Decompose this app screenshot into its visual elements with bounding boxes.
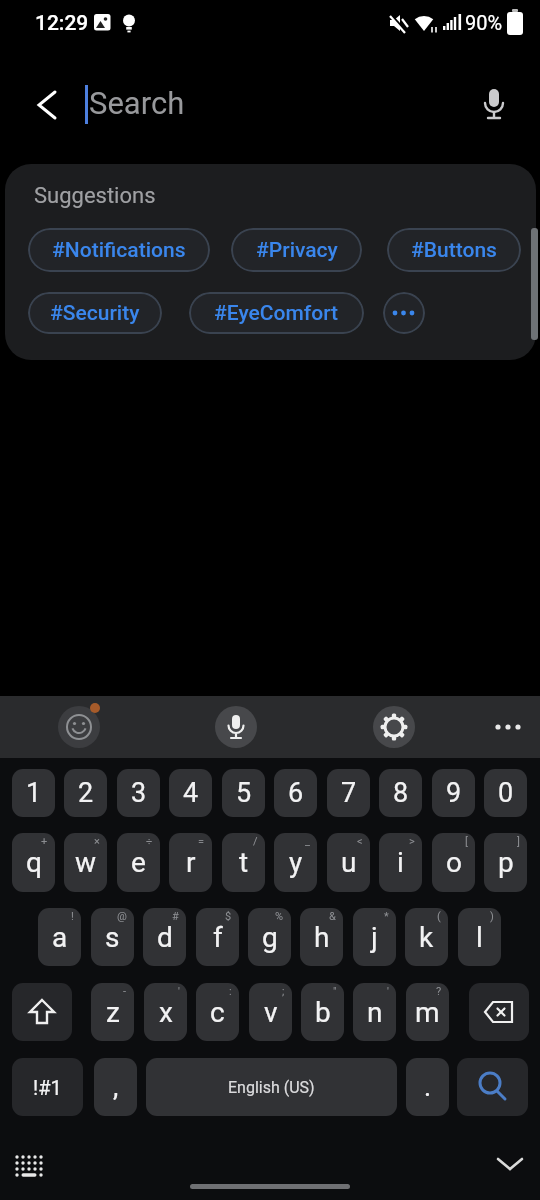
staticText: ? bbox=[436, 985, 442, 998]
staticText: n bbox=[367, 996, 383, 1029]
staticText: _ bbox=[305, 835, 310, 848]
button[interactable]: x bbox=[144, 983, 187, 1041]
button[interactable]: e bbox=[117, 833, 160, 892]
button[interactable]: . bbox=[406, 1058, 449, 1116]
staticText: [ bbox=[465, 835, 468, 848]
button[interactable]: 0 bbox=[484, 769, 527, 817]
button[interactable]: 1 bbox=[12, 769, 55, 817]
staticText: a bbox=[52, 921, 68, 954]
staticText: x bbox=[159, 996, 173, 1029]
staticText: = bbox=[198, 835, 205, 848]
button[interactable]: s bbox=[91, 908, 134, 966]
button[interactable]: #Security bbox=[28, 292, 162, 334]
staticText: u bbox=[341, 846, 357, 879]
button[interactable]: 8 bbox=[379, 769, 422, 817]
button[interactable]: f bbox=[196, 908, 239, 966]
button[interactable]: p bbox=[484, 833, 527, 892]
staticText: $ bbox=[225, 910, 232, 923]
staticText: o bbox=[446, 846, 462, 879]
staticText: 2 bbox=[78, 777, 94, 809]
staticText: c bbox=[210, 996, 225, 1029]
button[interactable]: #Privacy bbox=[231, 228, 362, 272]
button[interactable]: o bbox=[432, 833, 475, 892]
button[interactable]: 4 bbox=[169, 769, 212, 817]
staticText: * bbox=[384, 910, 389, 923]
staticText: ; bbox=[282, 985, 285, 998]
button[interactable]: u bbox=[327, 833, 370, 892]
staticText: k bbox=[419, 921, 434, 954]
staticText: 4 bbox=[183, 777, 199, 809]
button[interactable]: 3 bbox=[117, 769, 160, 817]
staticText: b bbox=[315, 996, 331, 1029]
staticText: s bbox=[105, 921, 120, 954]
button[interactable]: #EyeComfort bbox=[189, 292, 364, 334]
button[interactable]: g bbox=[248, 908, 291, 966]
button[interactable]: h bbox=[300, 908, 343, 966]
staticText: 9 bbox=[446, 777, 462, 809]
staticText: 0 bbox=[498, 777, 514, 809]
button[interactable]: n bbox=[353, 983, 396, 1041]
button[interactable]: a bbox=[38, 908, 81, 966]
staticText: 12:29 bbox=[35, 11, 89, 36]
button[interactable]: 9 bbox=[432, 769, 475, 817]
button[interactable]: t bbox=[222, 833, 265, 892]
button[interactable]: English (US) bbox=[146, 1058, 397, 1116]
staticText: English (US) bbox=[228, 1078, 315, 1097]
staticText: 90% bbox=[465, 11, 503, 34]
staticText: #EyeComfort bbox=[214, 301, 339, 326]
staticText: 6 bbox=[288, 777, 304, 809]
staticText: ' bbox=[387, 985, 389, 998]
button[interactable]: y bbox=[274, 833, 317, 892]
staticText: i bbox=[397, 846, 404, 879]
button[interactable]: 2 bbox=[64, 769, 107, 817]
button[interactable]: c bbox=[196, 983, 239, 1041]
staticText: r bbox=[186, 846, 196, 879]
staticText: #Buttons bbox=[411, 238, 497, 263]
button[interactable]: v bbox=[249, 983, 292, 1041]
button[interactable] bbox=[469, 983, 529, 1041]
button[interactable] bbox=[12, 983, 72, 1041]
button[interactable]: l bbox=[458, 908, 501, 966]
button[interactable]: m bbox=[406, 983, 449, 1041]
button[interactable]: z bbox=[91, 983, 134, 1041]
staticText: h bbox=[314, 921, 330, 954]
staticText: f bbox=[213, 921, 223, 954]
button[interactable]: d bbox=[143, 908, 186, 966]
button[interactable] bbox=[24, 81, 72, 129]
button[interactable]: 7 bbox=[327, 769, 370, 817]
staticText: !#1 bbox=[33, 1076, 62, 1099]
button[interactable] bbox=[215, 706, 257, 748]
staticText: × bbox=[94, 835, 100, 848]
button[interactable] bbox=[457, 1058, 528, 1116]
button[interactable]: r bbox=[169, 833, 212, 892]
button[interactable]: #Buttons bbox=[387, 228, 521, 272]
staticText: d bbox=[157, 921, 173, 954]
button[interactable] bbox=[383, 292, 425, 334]
staticText: : bbox=[229, 985, 232, 998]
button[interactable]: w bbox=[64, 833, 107, 892]
button[interactable]: j bbox=[353, 908, 396, 966]
button[interactable] bbox=[487, 706, 529, 748]
button[interactable]: #Notifications bbox=[28, 228, 210, 272]
button[interactable] bbox=[6, 1144, 52, 1188]
button[interactable] bbox=[486, 1142, 534, 1186]
button[interactable] bbox=[58, 706, 100, 748]
button[interactable]: !#1 bbox=[12, 1058, 83, 1116]
button[interactable] bbox=[470, 81, 518, 129]
staticText: q bbox=[26, 846, 42, 879]
button[interactable]: , bbox=[94, 1058, 137, 1116]
staticText: + bbox=[41, 835, 48, 848]
staticText: 3 bbox=[131, 777, 147, 809]
staticText: j bbox=[371, 921, 378, 954]
staticText: t bbox=[239, 846, 249, 879]
button[interactable]: 5 bbox=[222, 769, 265, 817]
button[interactable] bbox=[373, 706, 415, 748]
staticText: > bbox=[409, 835, 415, 848]
button[interactable]: i bbox=[379, 833, 422, 892]
button[interactable]: b bbox=[301, 983, 344, 1041]
button[interactable]: 6 bbox=[274, 769, 317, 817]
button[interactable]: q bbox=[12, 833, 55, 892]
button[interactable]: k bbox=[405, 908, 448, 966]
staticText: m bbox=[415, 996, 440, 1029]
staticText: % bbox=[275, 910, 284, 923]
